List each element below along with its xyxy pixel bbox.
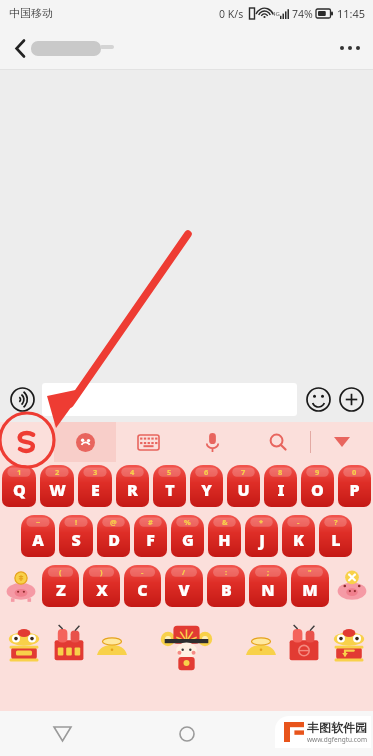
staticText: - (297, 517, 300, 527)
button[interactable]: Back (0, 711, 125, 756)
button[interactable]: Symbols (2, 615, 46, 675)
button[interactable]: 2 (40, 465, 74, 507)
staticText: 7 (241, 467, 246, 477)
button[interactable]: - (124, 565, 161, 607)
staticText: W (49, 479, 66, 501)
button[interactable]: Keyboard layout (116, 422, 180, 462)
button[interactable]: % (171, 515, 204, 557)
button[interactable]: ) (83, 565, 120, 607)
staticText: R (127, 479, 138, 501)
staticText: I (277, 479, 285, 501)
staticText: Z (56, 579, 66, 601)
staticText: C (137, 579, 148, 601)
button[interactable]: 0 (338, 465, 371, 507)
staticText: D (108, 529, 120, 551)
staticText: - (141, 567, 144, 577)
button[interactable]: 1 (2, 465, 36, 507)
button[interactable]: Comma (92, 615, 132, 675)
button[interactable]: & (208, 515, 241, 557)
staticText: M (302, 579, 318, 601)
staticText: T (165, 479, 175, 501)
staticText: N (261, 579, 275, 601)
staticText: 3 (93, 467, 98, 477)
button[interactable]: Emoji panel (281, 615, 327, 675)
staticText: 中国移动 (9, 6, 53, 20)
staticText: 9 (315, 467, 320, 477)
staticText: 5 (167, 467, 172, 477)
button[interactable]: Voice input (180, 422, 245, 462)
button[interactable]: / (165, 565, 203, 607)
staticText: Y (201, 479, 212, 501)
staticText: ! (75, 517, 78, 527)
staticText: / (182, 567, 186, 577)
button[interactable]: Recents (249, 711, 373, 756)
button[interactable]: Shift (2, 565, 40, 607)
staticText: % (184, 517, 191, 527)
staticText: www.dgfengtu.com (307, 735, 367, 744)
staticText: 1 (17, 467, 22, 477)
button[interactable]: : (207, 565, 245, 607)
button[interactable]: Space, Chinese input (132, 615, 241, 675)
button[interactable]: 9 (301, 465, 334, 507)
button[interactable]: ? (319, 515, 352, 557)
staticText: ( (59, 567, 62, 577)
staticText: V (178, 579, 190, 601)
button[interactable]: - (282, 515, 315, 557)
button[interactable]: ! (59, 515, 93, 557)
staticText: P (349, 479, 360, 501)
button[interactable]: @ (97, 515, 130, 557)
staticText: O (311, 479, 324, 501)
button[interactable]: Home (125, 711, 249, 756)
button[interactable]: Enter (327, 615, 371, 675)
button[interactable]: Theme (54, 422, 116, 462)
staticText: B (221, 579, 232, 601)
button[interactable]: ( (42, 565, 79, 607)
button[interactable]: More options (327, 26, 373, 70)
button[interactable]: Hide keyboard (311, 422, 373, 462)
button[interactable]: ; (249, 565, 287, 607)
staticText: 6 (204, 467, 209, 477)
button[interactable]: 7 (227, 465, 260, 507)
staticText: ? (334, 517, 338, 527)
button[interactable]: Numbers 123 (46, 615, 92, 675)
staticText: X (96, 579, 108, 601)
staticText: H (218, 529, 231, 551)
button[interactable]: Delete (333, 565, 371, 607)
staticText: 8 (278, 467, 283, 477)
staticText: 4G (272, 10, 280, 18)
staticText: L (331, 529, 341, 551)
staticText: G (182, 529, 194, 551)
button[interactable]: 4 (116, 465, 149, 507)
button[interactable]: Sogou input settings (0, 422, 54, 462)
staticText: 11:45 (337, 6, 366, 21)
staticText: A (32, 529, 44, 551)
staticText: ~ (36, 517, 41, 527)
button[interactable]: Back (0, 28, 40, 68)
button[interactable]: " (291, 565, 329, 607)
staticText: ; (267, 567, 270, 577)
button[interactable]: * (245, 515, 278, 557)
staticText: Q (13, 479, 26, 501)
button[interactable]: 6 (190, 465, 223, 507)
button[interactable]: Search (245, 422, 310, 462)
staticText: S (71, 529, 81, 551)
staticText: 0 K/s (219, 7, 244, 21)
staticText: @ (110, 517, 117, 527)
staticText: 2 (55, 467, 60, 477)
staticText: 74% (292, 7, 313, 21)
button[interactable]: Period (241, 615, 281, 675)
button[interactable]: Message input (42, 383, 297, 416)
button[interactable]: 5 (153, 465, 186, 507)
button[interactable]: # (134, 515, 167, 557)
staticText: U (237, 479, 250, 501)
staticText: F (146, 529, 155, 551)
staticText: E (91, 479, 100, 501)
staticText: * (259, 517, 264, 527)
button[interactable]: 8 (264, 465, 297, 507)
staticText: : (225, 567, 228, 577)
button[interactable]: Voice message (7, 384, 37, 414)
button[interactable]: More functions (336, 384, 366, 414)
button[interactable]: ~ (21, 515, 55, 557)
button[interactable]: 3 (78, 465, 112, 507)
button[interactable]: Emoji (303, 384, 333, 414)
